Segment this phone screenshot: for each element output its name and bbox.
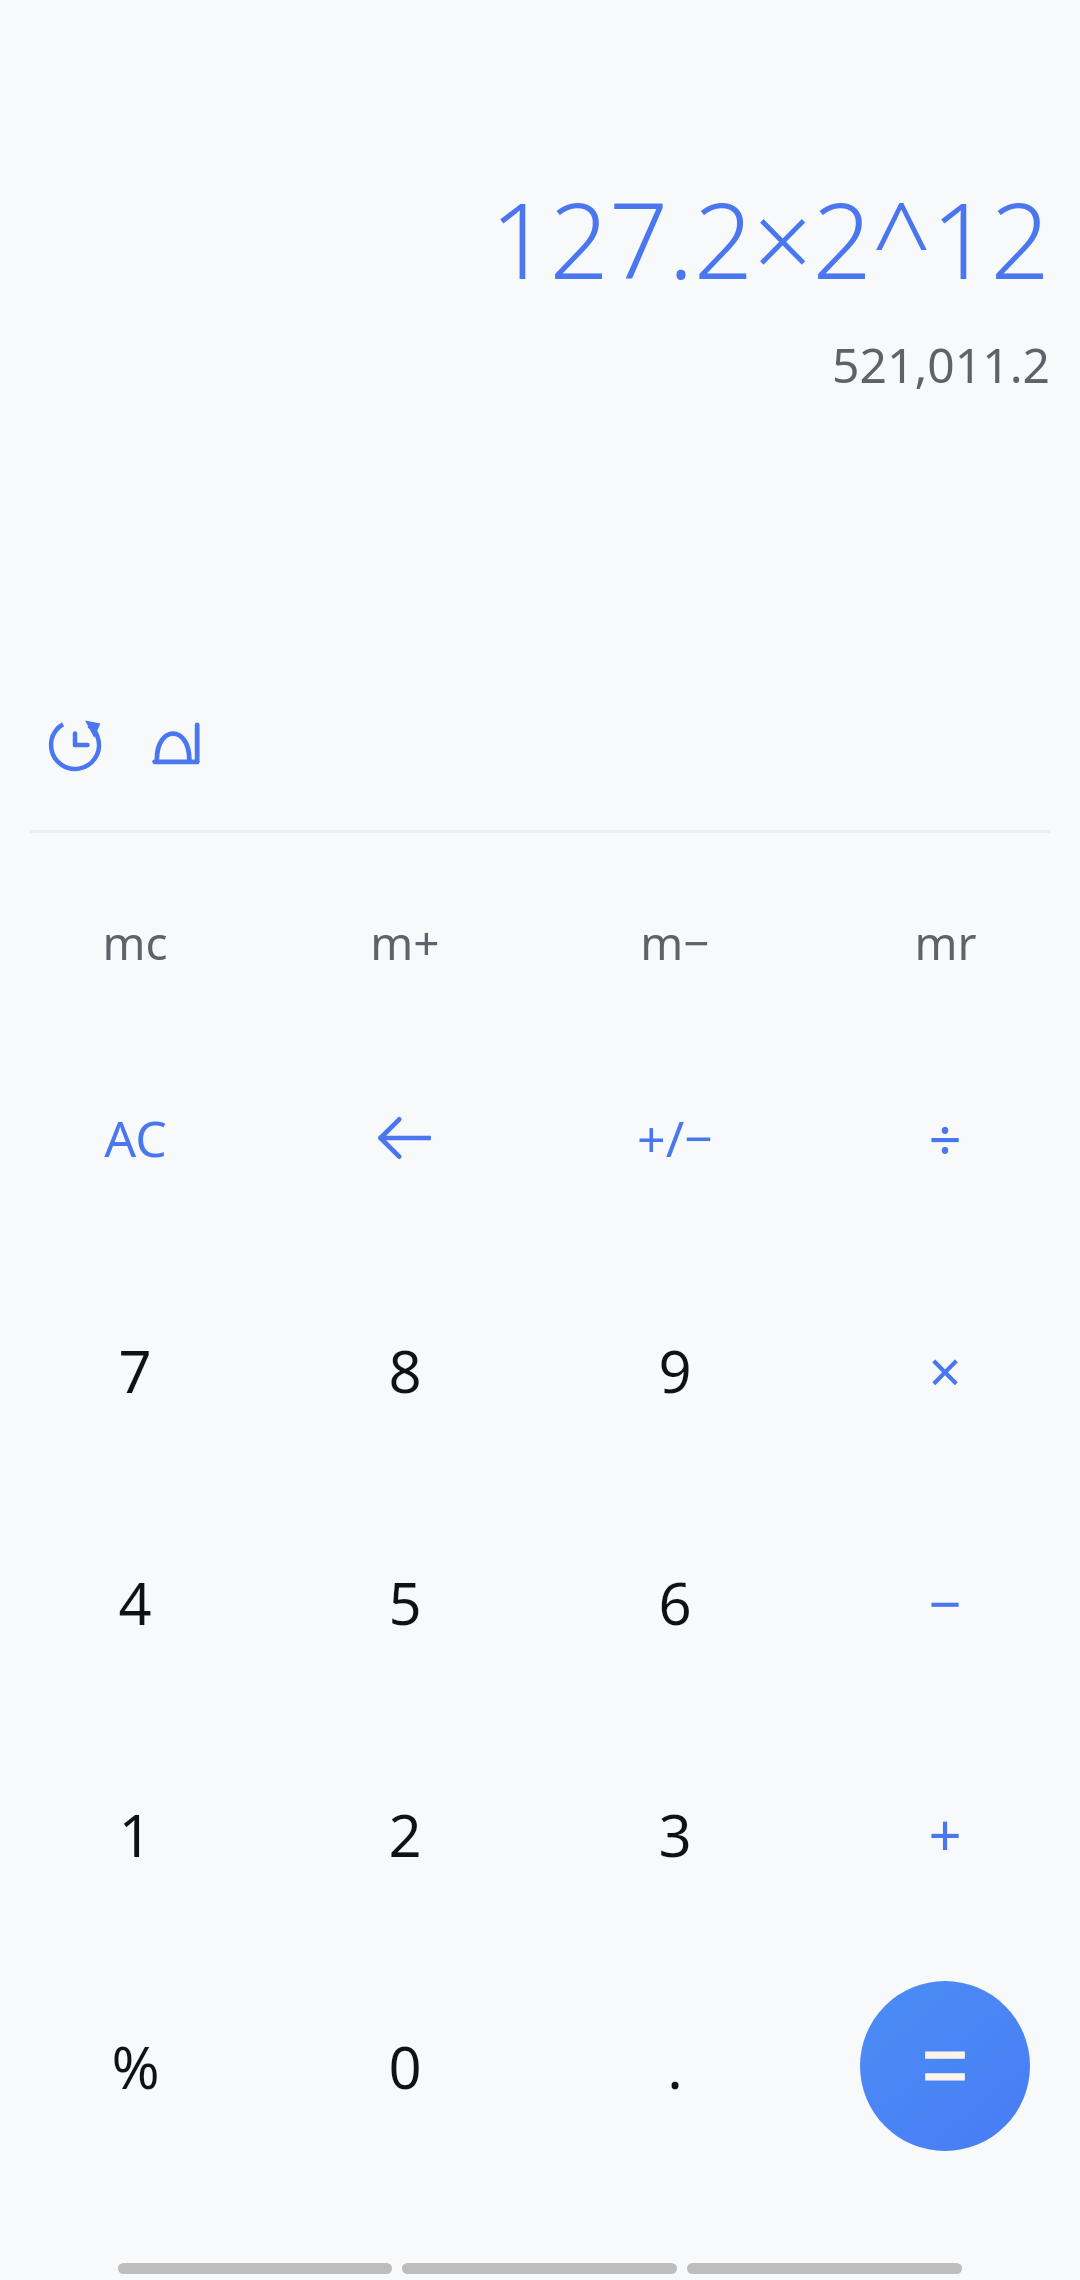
- button[interactable]: Navigation: [118, 2263, 392, 2274]
- staticText: +: [928, 1795, 962, 1874]
- button[interactable]: +/−: [540, 1022, 810, 1254]
- staticText: 8: [388, 1331, 422, 1410]
- button[interactable]: 2: [270, 1718, 540, 1950]
- button[interactable]: 6: [540, 1486, 810, 1718]
- staticText: 127.2×2^12: [30, 168, 1050, 310]
- staticText: mr: [914, 911, 977, 974]
- staticText: 0: [388, 2027, 422, 2106]
- button[interactable]: ×: [810, 1254, 1080, 1486]
- button[interactable]: Backspace: [270, 1022, 540, 1254]
- button[interactable]: %: [0, 1950, 270, 2182]
- staticText: ×: [928, 1331, 962, 1410]
- staticText: .: [667, 2027, 683, 2106]
- button[interactable]: 1: [0, 1718, 270, 1950]
- button[interactable]: Equals: [860, 1981, 1030, 2151]
- button[interactable]: −: [810, 1486, 1080, 1718]
- button[interactable]: 9: [540, 1254, 810, 1486]
- staticText: mc: [102, 911, 168, 974]
- button[interactable]: 7: [0, 1254, 270, 1486]
- button[interactable]: mc: [0, 862, 270, 1022]
- staticText: 4: [118, 1563, 152, 1642]
- button[interactable]: 4: [0, 1486, 270, 1718]
- staticText: m−: [640, 911, 710, 974]
- button[interactable]: ÷: [810, 1022, 1080, 1254]
- staticText: 5: [388, 1563, 422, 1642]
- button[interactable]: mr: [810, 862, 1080, 1022]
- button[interactable]: 5: [270, 1486, 540, 1718]
- staticText: ÷: [928, 1099, 962, 1178]
- button[interactable]: m−: [540, 862, 810, 1022]
- staticText: AC: [104, 1104, 167, 1172]
- button[interactable]: Navigation: [402, 2263, 677, 2274]
- staticText: 7: [118, 1331, 152, 1410]
- staticText: m+: [370, 911, 440, 974]
- staticText: +/−: [637, 1104, 713, 1172]
- button[interactable]: History: [34, 704, 116, 786]
- staticText: 2: [388, 1795, 422, 1874]
- button[interactable]: 8: [270, 1254, 540, 1486]
- button[interactable]: AC: [0, 1022, 270, 1254]
- button[interactable]: Navigation: [687, 2263, 962, 2274]
- staticText: 3: [658, 1795, 692, 1874]
- button[interactable]: m+: [270, 862, 540, 1022]
- button[interactable]: +: [810, 1718, 1080, 1950]
- staticText: %: [111, 2027, 160, 2106]
- button[interactable]: .: [540, 1950, 810, 2182]
- staticText: −: [928, 1563, 962, 1642]
- staticText: 9: [658, 1331, 692, 1410]
- button[interactable]: 3: [540, 1718, 810, 1950]
- button[interactable]: Graph: [136, 704, 218, 786]
- staticText: 521,011.2: [30, 332, 1050, 397]
- button[interactable]: 0: [270, 1950, 540, 2182]
- staticText: 1: [118, 1795, 152, 1874]
- staticText: 6: [658, 1563, 692, 1642]
